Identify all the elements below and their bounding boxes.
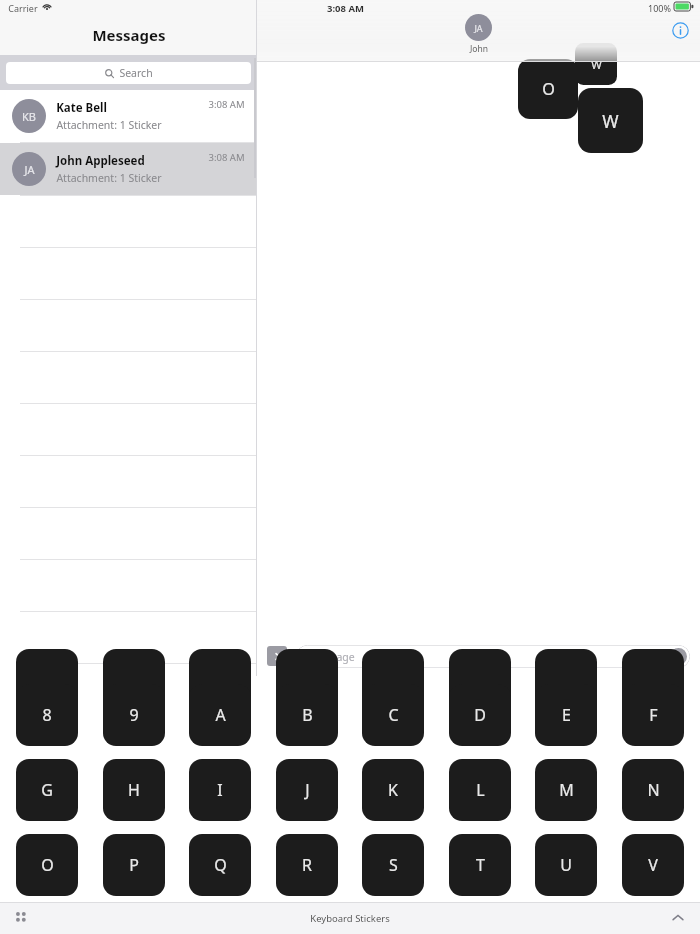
button[interactable]: Collapse xyxy=(666,906,690,930)
staticText: B xyxy=(302,704,313,726)
staticText: S xyxy=(389,854,398,876)
staticText: W xyxy=(591,57,602,72)
button[interactable]: C xyxy=(362,684,424,746)
staticText: John Appleseed xyxy=(56,153,145,169)
button[interactable]: K xyxy=(362,759,424,821)
button[interactable]: I xyxy=(189,759,251,821)
button[interactable]: Sticker xyxy=(449,649,511,711)
button[interactable]: Sticker xyxy=(103,649,165,711)
button[interactable]: Sticker xyxy=(16,649,78,711)
button[interactable]: R xyxy=(276,834,338,896)
staticText: iMessage xyxy=(308,650,355,664)
staticText: 8 xyxy=(42,704,52,726)
button[interactable]: Search xyxy=(6,62,251,84)
button[interactable]: W xyxy=(575,43,617,85)
button[interactable]: Show apps xyxy=(267,646,287,666)
button[interactable]: U xyxy=(535,834,597,896)
button[interactable]: W xyxy=(578,88,643,153)
staticText: N xyxy=(647,779,660,801)
button[interactable]: V xyxy=(622,834,684,896)
button[interactable]: iMessage xyxy=(296,645,690,668)
button[interactable]: Sticker xyxy=(189,649,251,711)
button[interactable]: A xyxy=(189,684,251,746)
staticText: U xyxy=(560,854,572,876)
staticText: John xyxy=(470,43,488,55)
staticText: H xyxy=(128,779,140,801)
button[interactable]: T xyxy=(449,834,511,896)
staticText: Messages xyxy=(92,25,166,45)
staticText: JA xyxy=(24,162,35,177)
staticText: A xyxy=(215,704,226,726)
button[interactable]: J xyxy=(276,759,338,821)
button[interactable]: H xyxy=(103,759,165,821)
button[interactable]: Sticker xyxy=(276,649,338,711)
button[interactable]: M xyxy=(535,759,597,821)
staticText: C xyxy=(388,704,399,726)
button[interactable]: P xyxy=(103,834,165,896)
staticText: O xyxy=(542,78,555,100)
staticText: O xyxy=(41,854,54,876)
button[interactable]: O xyxy=(16,834,78,896)
staticText: Attachment: 1 Sticker xyxy=(56,118,162,132)
button[interactable]: G xyxy=(16,759,78,821)
button[interactable]: D xyxy=(449,684,511,746)
button[interactable]: O xyxy=(518,59,578,119)
button[interactable]: F xyxy=(622,684,684,746)
staticText: Carrier xyxy=(8,2,38,14)
staticText: 9 xyxy=(129,704,139,726)
staticText: F xyxy=(649,704,658,726)
button[interactable]: Sticker xyxy=(362,649,424,711)
staticText: V xyxy=(648,854,658,876)
button[interactable]: Sticker xyxy=(535,649,597,711)
staticText: Q xyxy=(214,854,227,876)
staticText: G xyxy=(41,779,53,801)
button[interactable]: Details xyxy=(668,18,692,42)
button[interactable]: Sticker xyxy=(622,649,684,711)
button[interactable]: N xyxy=(622,759,684,821)
staticText: Attachment: 1 Sticker xyxy=(56,171,162,185)
button[interactable]: E xyxy=(535,684,597,746)
staticText: E xyxy=(562,704,571,726)
button[interactable]: JA xyxy=(465,14,492,55)
staticText: R xyxy=(302,854,312,876)
staticText: T xyxy=(476,854,485,876)
button[interactable]: S xyxy=(362,834,424,896)
button[interactable]: Dictate xyxy=(670,648,687,665)
staticText: P xyxy=(129,854,139,876)
staticText: M xyxy=(559,779,574,801)
staticText: W xyxy=(602,109,619,133)
button[interactable]: Q xyxy=(189,834,251,896)
staticText: Kate Bell xyxy=(56,100,107,116)
staticText: Keyboard Stickers xyxy=(310,912,390,925)
staticText: KB xyxy=(22,109,36,124)
staticText: 3:08 AM xyxy=(208,98,245,111)
button[interactable]: B xyxy=(276,684,338,746)
button[interactable]: L xyxy=(449,759,511,821)
button[interactable]: JA xyxy=(0,143,257,195)
staticText: 3:08 AM xyxy=(208,151,245,164)
button[interactable]: 8 xyxy=(16,684,78,746)
staticText: Search xyxy=(119,66,153,80)
staticText: 100% xyxy=(648,2,671,14)
staticText: JA xyxy=(474,22,483,34)
staticText: K xyxy=(388,779,398,801)
staticText: L xyxy=(476,779,485,801)
staticText: I xyxy=(217,779,223,801)
button[interactable]: KB xyxy=(0,90,257,142)
button[interactable]: All apps xyxy=(10,906,34,930)
staticText: J xyxy=(305,779,310,801)
staticText: D xyxy=(474,704,486,726)
staticText: 3:08 AM xyxy=(327,2,364,15)
button[interactable]: 9 xyxy=(103,684,165,746)
